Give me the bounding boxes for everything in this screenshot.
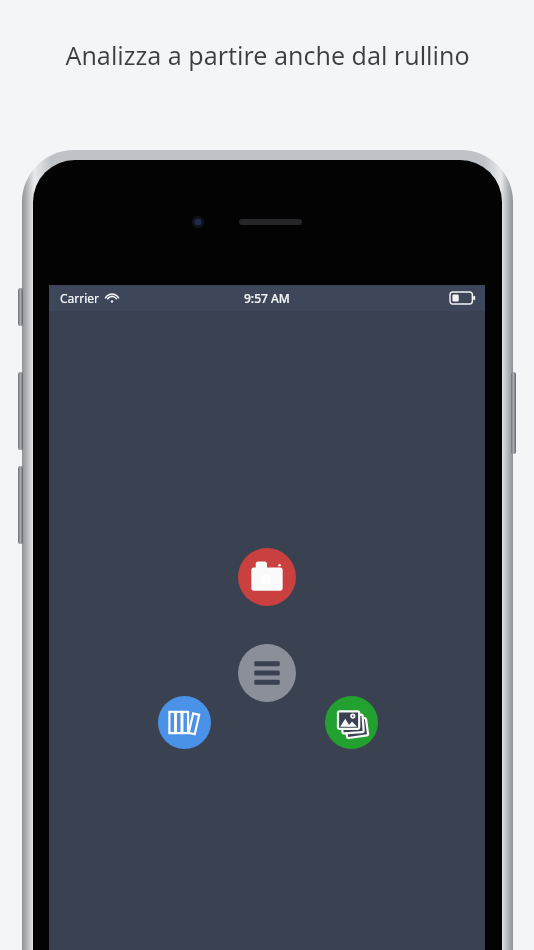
button[interactable]: Rullino foto bbox=[325, 696, 378, 749]
staticText: Carrier bbox=[60, 290, 100, 306]
button[interactable]: Scatta foto bbox=[238, 548, 296, 606]
button[interactable]: Menu bbox=[238, 644, 296, 702]
staticText: Analizza a partire anche dal rullino bbox=[65, 38, 470, 72]
staticText: 9:57 AM bbox=[244, 290, 290, 306]
button[interactable]: Libreria bbox=[158, 696, 211, 749]
